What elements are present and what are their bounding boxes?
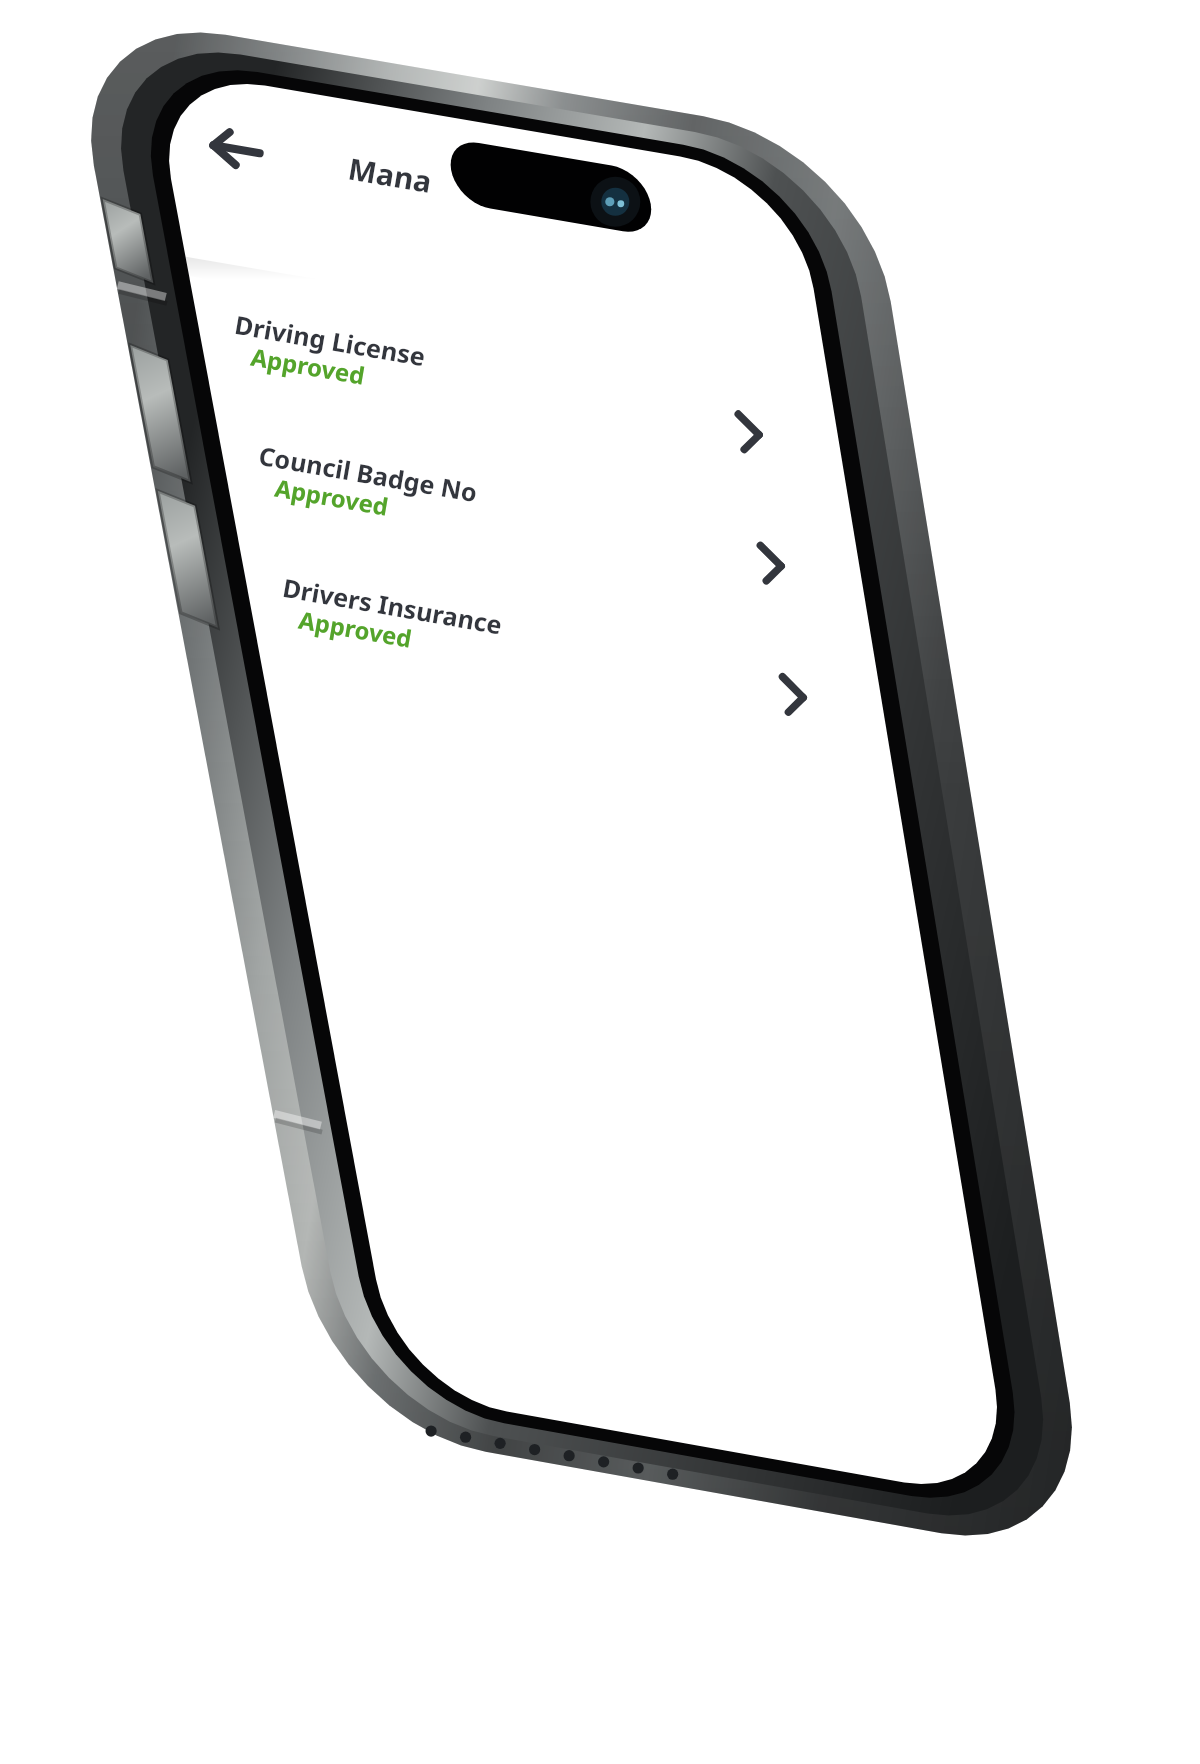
staticText: Council Badge No (256, 438, 480, 509)
staticText: Drivers Insurance (280, 570, 505, 641)
button[interactable] (178, 450, 788, 554)
staticText: Mana (345, 148, 435, 202)
button[interactable]: Back (148, 46, 244, 132)
staticText: Approved (296, 603, 415, 654)
staticText: Approved (272, 471, 391, 522)
button[interactable] (178, 344, 788, 448)
button[interactable] (178, 238, 788, 342)
staticText: Approved (249, 340, 368, 391)
staticText: Driving License (232, 307, 428, 373)
